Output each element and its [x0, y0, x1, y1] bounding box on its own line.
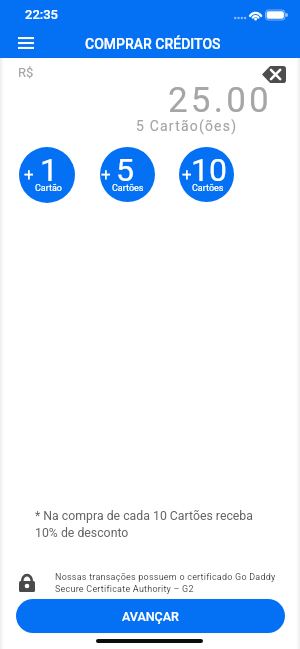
staticText: Cartão — [35, 183, 62, 194]
staticText: 25.00 — [168, 80, 272, 121]
button[interactable] — [100, 147, 155, 202]
button[interactable]: Menu — [10, 28, 42, 58]
staticText: R$ — [18, 65, 34, 80]
staticText: + — [182, 164, 192, 184]
button[interactable]: Apagar — [262, 66, 286, 83]
staticText: AVANÇAR — [122, 609, 179, 624]
staticText: 5 Cartão(ões) — [136, 118, 238, 134]
staticText: * Na compra de cada 10 Cartões receba 10… — [35, 509, 253, 540]
button[interactable]: AVANÇAR — [16, 599, 285, 633]
staticText: 10 — [191, 151, 227, 189]
staticText: 1 — [40, 151, 58, 189]
button[interactable] — [19, 147, 75, 203]
staticText: Cartões — [112, 183, 144, 194]
staticText: + — [101, 164, 111, 184]
staticText: 5 — [116, 151, 134, 189]
staticText: 22:35 — [25, 7, 58, 22]
staticText: Cartões — [192, 183, 224, 194]
button[interactable] — [179, 147, 234, 202]
staticText: + — [24, 164, 34, 184]
staticText: Nossas transações possuem o certificado … — [55, 572, 276, 594]
staticText: COMPRAR CRÉDITOS — [85, 36, 221, 52]
